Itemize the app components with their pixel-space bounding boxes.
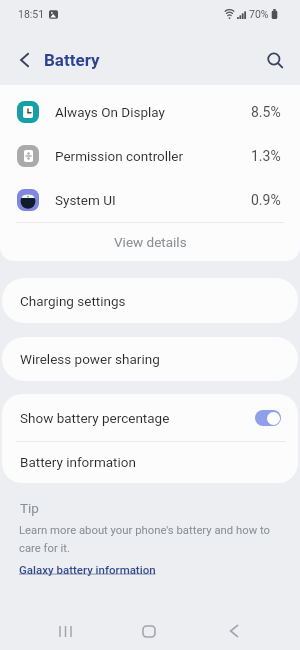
button[interactable]: Battery information (2, 441, 298, 483)
staticText: View details (114, 234, 187, 250)
staticText: Wireless power sharing (20, 351, 160, 367)
staticText: 0.9% (251, 192, 281, 208)
staticText: Battery (44, 50, 100, 70)
staticText: Tip (20, 500, 39, 516)
button[interactable]: System UI (0, 178, 300, 222)
button[interactable]: Wireless power sharing (2, 337, 298, 381)
staticText: 8.5% (251, 104, 281, 120)
button[interactable]: Show battery percentage (2, 394, 298, 441)
staticText: 1.3% (251, 148, 281, 164)
staticText: Battery information (20, 454, 136, 470)
button[interactable]: Back (213, 610, 255, 650)
button[interactable]: Search (261, 46, 289, 74)
staticText: System UI (55, 192, 116, 208)
button[interactable]: Navigate up (10, 45, 39, 74)
staticText: 70% (249, 8, 269, 20)
staticText: Learn more about your phone's battery an… (19, 524, 277, 555)
button[interactable]: Recent apps (44, 610, 86, 650)
staticText: Always On Display (55, 104, 165, 120)
button[interactable]: Home (128, 610, 170, 650)
staticText: 18:51 (18, 8, 45, 20)
button[interactable]: Charging settings (2, 278, 298, 323)
button[interactable]: Galaxy battery information (19, 563, 156, 576)
staticText: Galaxy battery information (19, 563, 156, 576)
button[interactable]: View details (0, 223, 300, 261)
button[interactable]: Always On Display (0, 90, 300, 134)
staticText: Charging settings (20, 293, 126, 309)
button[interactable]: Permission controller (0, 134, 300, 178)
staticText: Permission controller (55, 148, 184, 164)
staticText: Show battery percentage (20, 410, 170, 426)
